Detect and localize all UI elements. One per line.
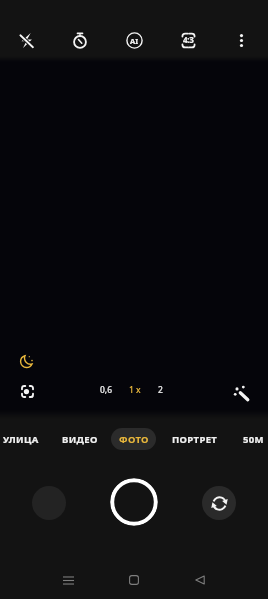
button[interactable]: Flash off [8,22,44,58]
staticText: 2 [158,384,163,396]
button[interactable]: 50M [238,430,268,448]
staticText: 1 x [129,384,141,396]
button[interactable]: 0,6 [92,381,120,399]
button[interactable]: ФОТО [111,428,156,450]
staticText: ФОТО [119,433,149,446]
button[interactable]: Scan document [14,378,40,404]
button[interactable]: Gallery [32,486,66,520]
button[interactable]: AI scene detection [116,22,152,58]
button[interactable]: ПОРТРЕТ [165,430,224,448]
button[interactable]: Switch camera [202,486,236,520]
button[interactable]: Back [184,564,216,596]
staticText: УЛИЦА [3,433,39,446]
staticText: 4:3 [183,34,194,45]
button[interactable]: Timer [62,22,98,58]
button[interactable]: Home [118,564,150,596]
button[interactable]: Filters [228,379,254,405]
staticText: ВИДЕО [62,433,98,446]
button[interactable]: Recents [52,564,84,596]
button[interactable]: УЛИЦА [0,430,43,448]
button[interactable]: More options [223,22,259,58]
button[interactable]: Aspect ratio 4 by 3 [170,22,206,58]
button[interactable]: 2 [146,381,174,399]
staticText: 0,6 [100,384,113,396]
button[interactable]: 1 x [121,381,149,399]
button[interactable]: Take photo [110,478,158,526]
button[interactable]: Night mode [14,348,40,374]
button[interactable]: ВИДЕО [57,430,102,448]
staticText: 50M [243,433,264,446]
staticText: ПОРТРЕТ [172,433,218,446]
staticText: AI [130,36,139,46]
